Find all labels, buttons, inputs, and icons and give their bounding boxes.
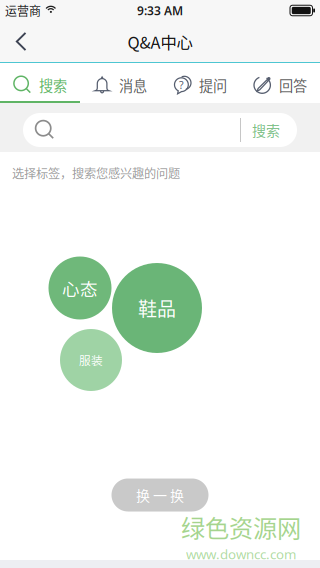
staticText: ? xyxy=(179,78,184,92)
button[interactable]: 心态 xyxy=(48,256,111,319)
staticText: 选择标签，搜索您感兴趣的问题 xyxy=(12,164,180,182)
staticText: 搜索 xyxy=(252,120,280,140)
button[interactable]: 消息 xyxy=(80,63,160,103)
button[interactable]: 服装 xyxy=(60,329,122,391)
button[interactable]: 鞋品 xyxy=(112,263,202,353)
staticText: www.downcc.com xyxy=(186,545,296,563)
staticText: 消息 xyxy=(119,75,147,95)
staticText: 9:33 AM xyxy=(137,2,183,18)
staticText: 回答 xyxy=(279,75,307,95)
staticText: 运营商 xyxy=(5,2,41,19)
button[interactable]: Back xyxy=(0,21,42,62)
staticText: 搜索 xyxy=(39,75,67,95)
button[interactable]: 搜索 xyxy=(0,63,80,103)
button[interactable]: 回答 xyxy=(240,63,320,103)
button[interactable]: ? xyxy=(160,63,240,103)
staticText: 服装 xyxy=(79,351,103,368)
staticText: 心态 xyxy=(62,275,98,301)
staticText: 换 一 换 xyxy=(136,485,184,505)
button[interactable]: 搜索 xyxy=(240,113,291,147)
staticText: 提问 xyxy=(199,75,227,95)
staticText: Q&A中心 xyxy=(127,30,192,53)
button[interactable]: 换 一 换 xyxy=(111,478,208,511)
staticText: 绿色资源网 xyxy=(181,509,301,544)
staticText: 鞋品 xyxy=(138,294,176,322)
